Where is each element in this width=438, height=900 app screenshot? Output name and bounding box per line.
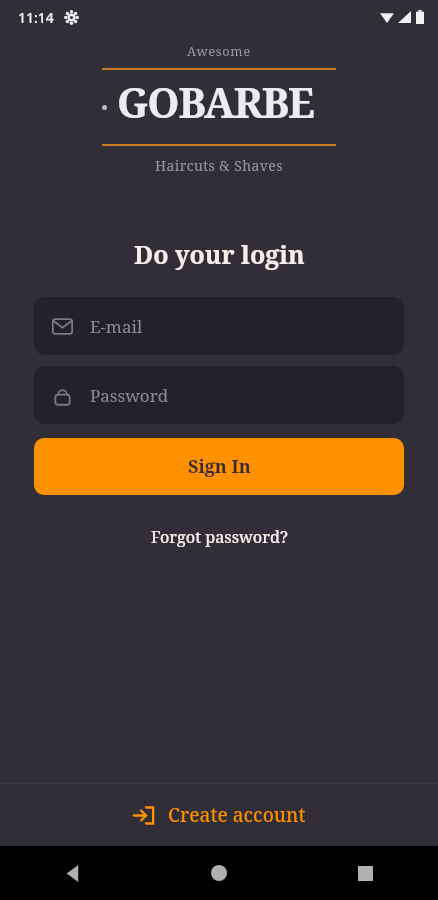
staticText: E-mail	[90, 315, 143, 338]
button[interactable]: Password	[34, 366, 404, 424]
button[interactable]: Forgot password?	[141, 522, 298, 552]
staticText: Do your login	[134, 237, 305, 271]
button[interactable]: Create account	[0, 784, 438, 846]
staticText: Create account	[168, 802, 306, 828]
button[interactable]: E-mail	[34, 297, 404, 355]
staticText: GOBARBER	[117, 74, 336, 140]
button[interactable]: Home	[146, 846, 292, 900]
staticText: Forgot password?	[151, 526, 288, 548]
staticText: Haircuts & Shaves	[155, 156, 283, 175]
staticText: Awesome	[187, 42, 251, 60]
staticText: Password	[90, 384, 169, 407]
staticText: 11:14	[18, 8, 54, 27]
button[interactable]: Sign In	[34, 438, 404, 495]
button[interactable]: Back	[0, 846, 146, 900]
button[interactable]: Recents	[292, 846, 438, 900]
staticText: Sign In	[188, 454, 251, 479]
